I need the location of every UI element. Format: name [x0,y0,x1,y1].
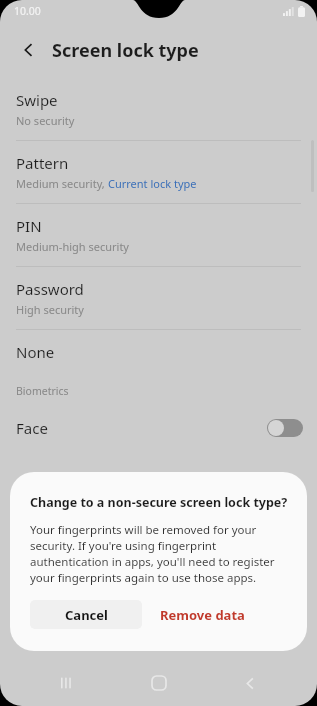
button[interactable]: Recents [43,660,91,706]
staticText: Medium-high security [16,239,129,254]
staticText: Swipe [16,90,58,110]
button[interactable]: Pattern [0,141,317,203]
button[interactable]: Cancel [30,600,142,629]
button[interactable]: Password [0,267,317,329]
staticText: PIN [16,216,42,236]
staticText: Screen lock type [52,38,199,63]
staticText: None [16,342,55,362]
staticText: Your fingerprints will be removed for yo… [30,522,289,586]
staticText: Change to a non-secure screen lock type? [30,494,288,511]
staticText: Remove data [160,606,245,624]
button[interactable]: Face [0,406,317,450]
button[interactable]: None [0,330,317,374]
staticText: Medium security, [16,176,108,191]
button[interactable]: Home [135,660,183,706]
staticText: No security [16,113,75,128]
staticText: Face [16,418,48,438]
staticText: Biometrics [16,384,69,398]
staticText: Current lock type [108,176,197,191]
button[interactable]: PIN [0,204,317,266]
staticText: 10.00 [14,4,41,18]
staticText: Pattern [16,153,69,173]
staticText: High security [16,302,84,317]
staticText: Cancel [65,606,108,624]
button[interactable]: Remove data [142,600,262,629]
button[interactable]: Back [14,35,44,65]
button[interactable]: Swipe [0,78,317,140]
staticText: Password [16,279,84,299]
